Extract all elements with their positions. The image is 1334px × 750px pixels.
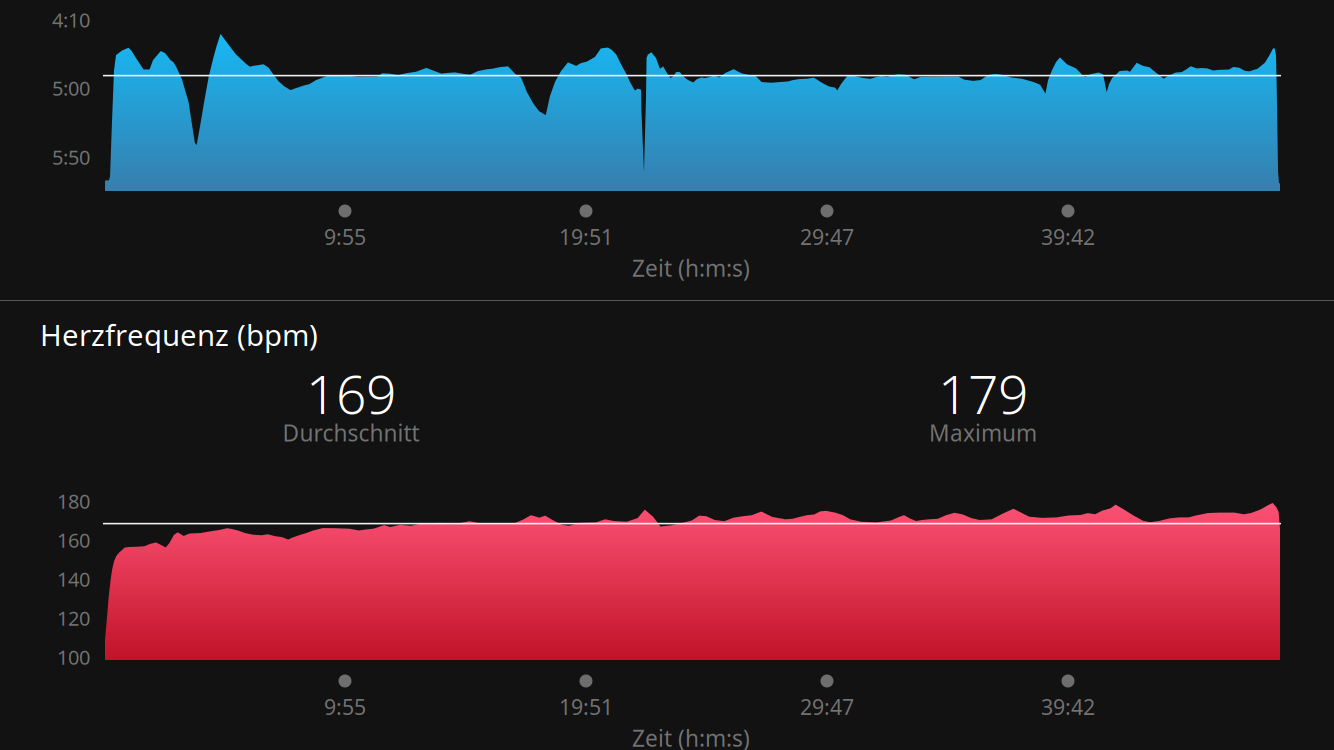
staticText: Herzfrequenz (bpm) — [40, 315, 318, 354]
staticText: 29:47 — [800, 693, 854, 721]
staticText: Durchschnitt — [282, 418, 419, 448]
staticText: 9:55 — [324, 223, 366, 251]
staticText: 120 — [57, 605, 90, 631]
staticText: 29:47 — [800, 223, 854, 251]
staticText: Maximum — [929, 418, 1037, 448]
staticText: 180 — [57, 488, 90, 514]
staticText: 9:55 — [324, 693, 366, 721]
button[interactable]: Tempo-Diagramm — [0, 0, 1334, 300]
staticText: 160 — [57, 527, 90, 553]
staticText: Zeit (h:m:s) — [632, 253, 750, 283]
staticText: 5:00 — [52, 75, 90, 101]
staticText: 140 — [57, 566, 90, 592]
staticText: 19:51 — [559, 693, 613, 721]
button[interactable]: Herzfrequenz-Diagramm — [0, 301, 1334, 750]
staticText: 39:42 — [1041, 223, 1095, 251]
staticText: 100 — [57, 644, 90, 670]
staticText: 179 — [938, 358, 1028, 429]
staticText: Zeit (h:m:s) — [632, 723, 750, 750]
staticText: 169 — [306, 358, 396, 429]
staticText: 4:10 — [52, 6, 90, 33]
staticText: 5:50 — [52, 144, 90, 170]
staticText: 19:51 — [559, 223, 613, 251]
staticText: 39:42 — [1041, 693, 1095, 721]
